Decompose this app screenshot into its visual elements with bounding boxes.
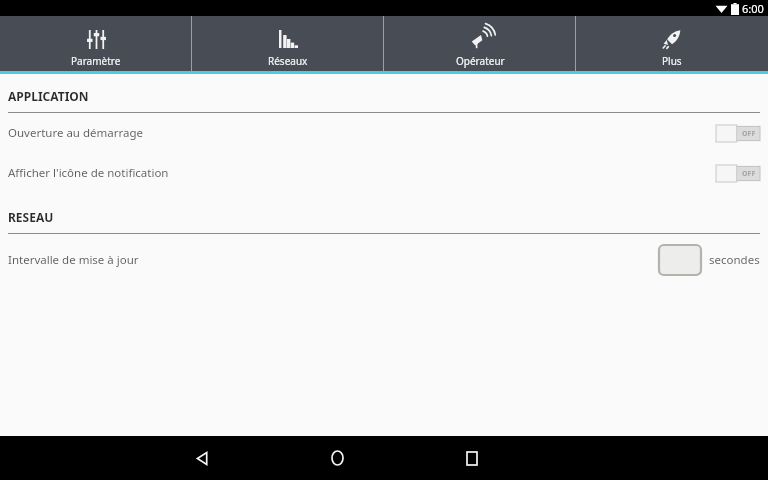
button[interactable]: Off [716, 125, 760, 142]
staticText: APPLICATION [8, 88, 89, 104]
staticText: OFF [742, 129, 756, 139]
button[interactable]: Home [315, 436, 359, 480]
button[interactable]: Paramètre [0, 16, 192, 71]
button[interactable]: Recent apps [450, 436, 494, 480]
staticText: Intervalle de mise à jour [8, 252, 659, 268]
button[interactable]: Plus [576, 16, 768, 71]
staticText: Afficher l'icône de notification [8, 165, 716, 181]
staticText: Réseaux [268, 54, 308, 68]
staticText: Paramètre [71, 54, 121, 68]
staticText: secondes [709, 252, 760, 268]
button[interactable]: Off [716, 165, 760, 182]
staticText: Opérateur [456, 54, 505, 68]
staticText: RESEAU [8, 209, 54, 225]
staticText: OFF [742, 169, 756, 179]
button[interactable]: Interval input [659, 245, 701, 275]
button[interactable]: Réseaux [192, 16, 384, 71]
button[interactable]: Back [180, 436, 224, 480]
button[interactable]: Ouverture au démarrage [0, 113, 768, 153]
button[interactable]: Afficher l'icône de notification [0, 153, 768, 193]
staticText: Ouverture au démarrage [8, 125, 716, 141]
button[interactable]: Intervalle de mise à jour [0, 234, 768, 286]
button[interactable]: Opérateur [384, 16, 576, 71]
staticText: 6:00 [742, 1, 764, 16]
staticText: Plus [662, 54, 682, 68]
